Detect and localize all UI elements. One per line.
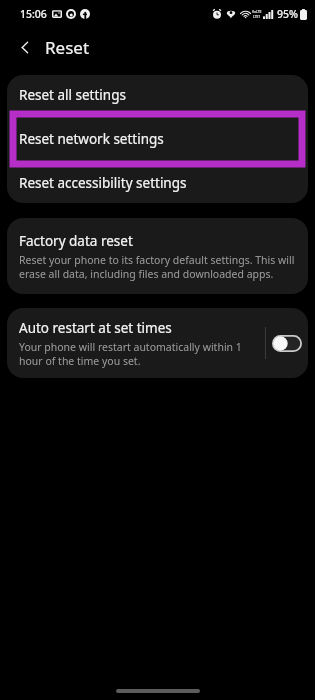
staticText: Auto restart at set times [19, 319, 172, 337]
staticText: VoLTE [252, 9, 262, 14]
button[interactable]: Auto restart at set times toggle [266, 308, 308, 378]
staticText: 15:06 [20, 7, 47, 21]
button[interactable]: Back [11, 33, 39, 61]
staticText: Factory data reset [19, 232, 133, 250]
button[interactable]: Reset accessibility settings [7, 163, 308, 203]
staticText: LTE1 [253, 14, 261, 19]
staticText: Reset your phone to its factory default … [19, 253, 295, 281]
staticText: Reset accessibility settings [19, 174, 187, 192]
button[interactable]: Factory data reset [7, 218, 308, 294]
staticText: Reset [45, 36, 90, 59]
button[interactable]: Reset network settings [7, 115, 308, 163]
button[interactable]: Auto restart at set times [7, 308, 308, 378]
staticText: 95% [277, 7, 298, 21]
staticText: Reset all settings [19, 86, 126, 104]
staticText: Reset network settings [19, 130, 164, 148]
staticText: Your phone will restart automatically wi… [19, 340, 259, 368]
button[interactable]: Reset all settings [7, 75, 308, 115]
